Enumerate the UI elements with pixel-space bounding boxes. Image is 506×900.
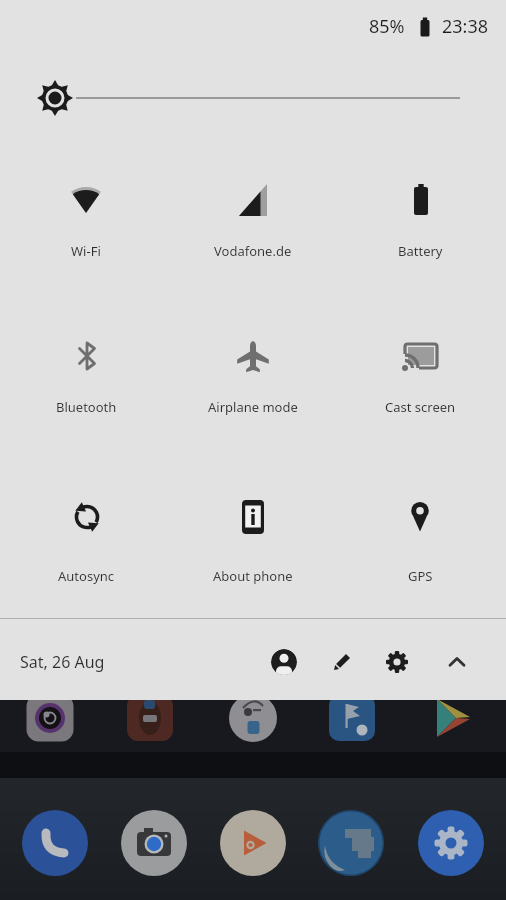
button[interactable]: GPS xyxy=(336,497,504,609)
staticText: 23:38 xyxy=(442,14,489,39)
button[interactable] xyxy=(26,694,74,742)
staticText: GPS xyxy=(408,567,433,585)
staticText: About phone xyxy=(213,567,293,585)
button[interactable]: About phone xyxy=(169,497,337,609)
button[interactable] xyxy=(320,640,364,684)
button[interactable]: Vodafone.de xyxy=(169,180,337,292)
staticText: Battery xyxy=(398,242,443,260)
button[interactable] xyxy=(119,808,189,878)
button[interactable]: Bluetooth xyxy=(2,336,170,448)
staticText: 85% xyxy=(369,14,405,39)
button[interactable] xyxy=(416,808,486,878)
button[interactable] xyxy=(428,694,476,742)
button[interactable] xyxy=(262,640,306,684)
staticText: Sat, 26 Aug xyxy=(20,651,105,673)
staticText: Cast screen xyxy=(385,398,456,416)
button[interactable]: Battery xyxy=(336,180,504,292)
staticText: Airplane mode xyxy=(208,398,298,416)
staticText: Bluetooth xyxy=(56,398,117,416)
button[interactable] xyxy=(126,694,174,742)
staticText: Wi-Fi xyxy=(71,242,101,260)
button[interactable]: Cast screen xyxy=(336,336,504,448)
button[interactable] xyxy=(20,808,90,878)
button[interactable] xyxy=(229,694,277,742)
button[interactable]: Airplane mode xyxy=(169,336,337,448)
button[interactable]: Autosync xyxy=(2,497,170,609)
button[interactable] xyxy=(375,640,419,684)
button[interactable] xyxy=(218,808,288,878)
button[interactable] xyxy=(37,80,73,116)
button[interactable] xyxy=(435,640,479,684)
staticText: Autosync xyxy=(58,567,115,585)
button[interactable]: Wi-Fi xyxy=(2,180,170,292)
button[interactable] xyxy=(316,808,386,878)
button[interactable] xyxy=(328,694,376,742)
staticText: Vodafone.de xyxy=(214,242,292,260)
